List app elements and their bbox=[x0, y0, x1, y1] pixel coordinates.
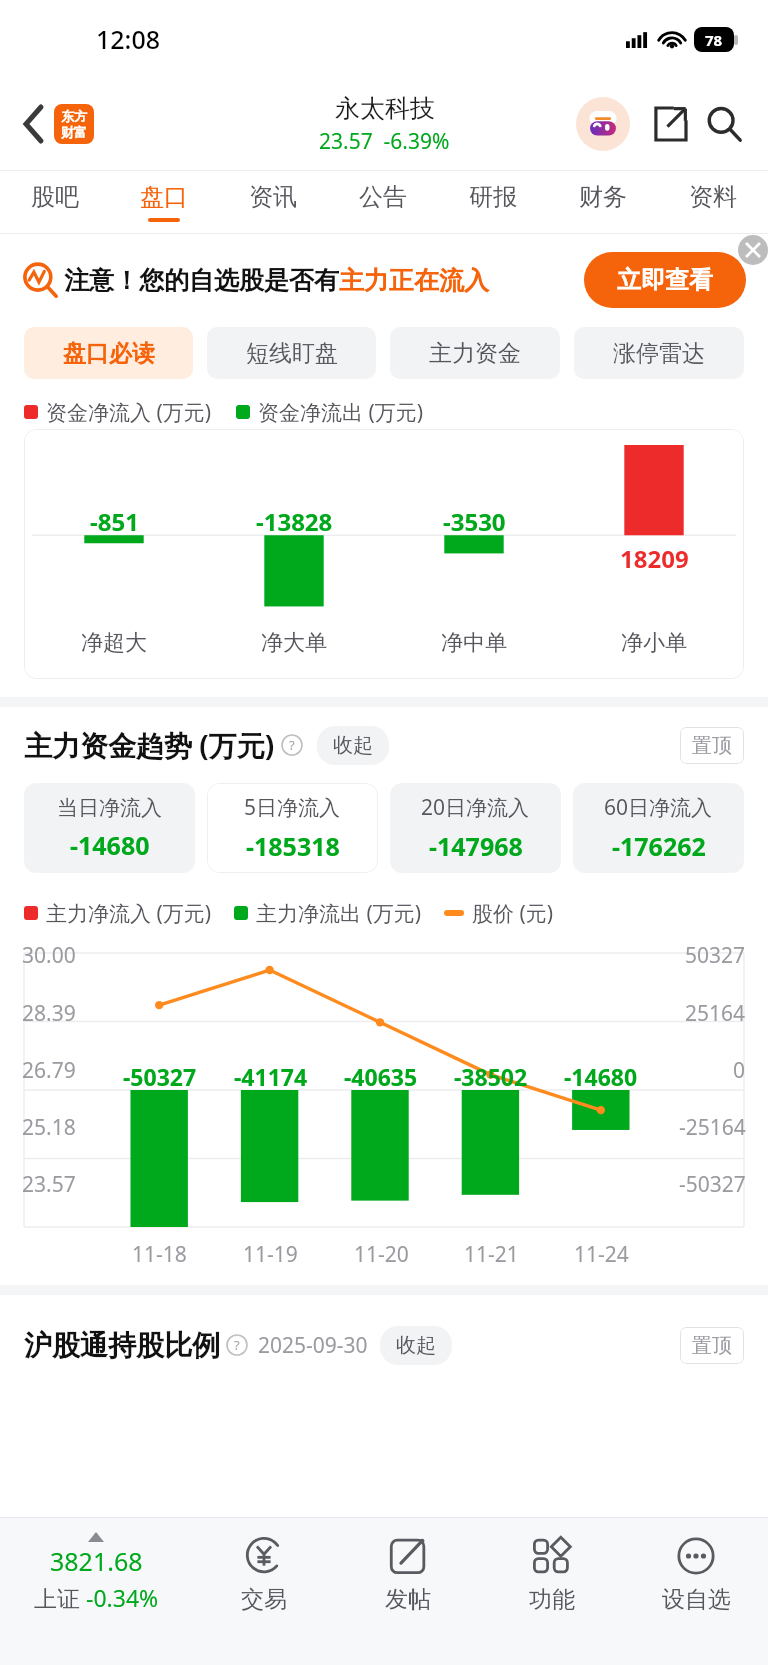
staticText: 23.57 -6.39% bbox=[319, 127, 450, 156]
staticText: 净超大 bbox=[81, 629, 147, 657]
button[interactable]: Back bbox=[16, 98, 102, 150]
button[interactable]: 5日净流入 bbox=[207, 783, 378, 873]
staticText: 净中单 bbox=[441, 629, 507, 657]
button[interactable]: 研报 bbox=[438, 171, 548, 233]
staticText: 23.57 bbox=[22, 1170, 76, 1199]
staticText: 主力净流入 (万元) bbox=[46, 899, 212, 928]
staticText: -0.34% bbox=[86, 1582, 159, 1613]
staticText: 设自选 bbox=[662, 1585, 731, 1614]
staticText: 2025-09-30 bbox=[258, 1331, 368, 1360]
button[interactable]: 收起 bbox=[380, 1326, 452, 1365]
button[interactable]: 设自选 bbox=[624, 1518, 768, 1665]
staticText: 25.18 bbox=[22, 1113, 76, 1142]
button[interactable]: 功能 bbox=[480, 1518, 624, 1665]
staticText: 主力资金趋势 (万元) bbox=[24, 726, 275, 764]
staticText: -3530 bbox=[443, 505, 506, 538]
staticText: 主力正在流入 bbox=[339, 265, 489, 296]
staticText: -50327 bbox=[123, 1061, 197, 1092]
button[interactable]: 当日净流入 bbox=[24, 783, 195, 873]
button[interactable]: 涨停雷达 bbox=[574, 327, 744, 379]
button[interactable]: 资讯 bbox=[218, 171, 328, 233]
staticText: -851 bbox=[90, 505, 139, 538]
staticText: -50327 bbox=[679, 1170, 746, 1199]
staticText: 11-20 bbox=[354, 1240, 409, 1269]
staticText: 5日净流入 bbox=[244, 793, 341, 822]
button[interactable]: 交易 bbox=[192, 1518, 336, 1665]
staticText: -185318 bbox=[246, 829, 340, 863]
staticText: -41174 bbox=[234, 1061, 308, 1092]
button[interactable]: Help bbox=[281, 734, 303, 756]
staticText: 18209 bbox=[620, 542, 689, 575]
button[interactable]: 发帖 bbox=[336, 1518, 480, 1665]
staticText: 30.00 bbox=[22, 941, 76, 970]
staticText: 置顶 bbox=[692, 1333, 732, 1358]
button[interactable]: 置顶 bbox=[680, 727, 744, 764]
button[interactable]: 3821.68 bbox=[0, 1518, 192, 1665]
staticText: -147968 bbox=[429, 829, 523, 863]
staticText: 20日净流入 bbox=[421, 793, 530, 822]
staticText: 股价 (元) bbox=[472, 899, 554, 928]
staticText: 收起 bbox=[396, 1333, 436, 1358]
staticText: 11-18 bbox=[132, 1240, 187, 1269]
button[interactable]: 财务 bbox=[548, 171, 658, 233]
button[interactable]: 收起 bbox=[317, 726, 389, 765]
button[interactable]: 20日净流入 bbox=[390, 783, 561, 873]
button[interactable]: Search bbox=[700, 100, 748, 148]
button[interactable]: 公告 bbox=[328, 171, 438, 233]
staticText: -14680 bbox=[70, 828, 150, 862]
staticText: 净小单 bbox=[621, 629, 687, 657]
button[interactable]: 资料 bbox=[658, 171, 768, 233]
button[interactable]: 置顶 bbox=[680, 1327, 744, 1364]
staticText: 财务 bbox=[579, 182, 627, 212]
staticText: -38502 bbox=[454, 1061, 528, 1092]
button[interactable]: 盘口必读 bbox=[24, 327, 193, 379]
staticText: 公告 bbox=[359, 182, 407, 212]
button[interactable]: 股吧 bbox=[0, 171, 109, 233]
staticText: 永太科技 bbox=[335, 93, 435, 124]
staticText: 交易 bbox=[241, 1585, 287, 1614]
staticText: 25164 bbox=[685, 999, 746, 1028]
button[interactable]: 立即查看 bbox=[584, 252, 746, 308]
staticText: 60日净流入 bbox=[604, 793, 713, 822]
staticText: 资讯 bbox=[249, 182, 297, 212]
staticText: 11-21 bbox=[464, 1240, 519, 1269]
button[interactable]: 主力资金 bbox=[390, 327, 560, 379]
staticText: 3821.68 bbox=[50, 1544, 143, 1578]
button[interactable]: 60日净流入 bbox=[573, 783, 744, 873]
staticText: 资金净流出 (万元) bbox=[258, 398, 424, 427]
staticText: 注意！您的自选股是否有 bbox=[64, 265, 339, 296]
staticText: 11-24 bbox=[574, 1240, 629, 1269]
staticText: 发帖 bbox=[385, 1585, 431, 1614]
button[interactable]: 盘口 bbox=[109, 171, 218, 233]
button[interactable]: 短线盯盘 bbox=[207, 327, 376, 379]
staticText: 28.39 bbox=[22, 999, 76, 1028]
staticText: ? bbox=[289, 736, 295, 754]
staticText: 立即查看 bbox=[617, 265, 713, 295]
staticText: ? bbox=[234, 1336, 240, 1354]
staticText: 资金净流入 (万元) bbox=[46, 398, 212, 427]
button[interactable]: Share bbox=[648, 102, 692, 146]
staticText: 11-19 bbox=[243, 1240, 298, 1269]
staticText: 26.79 bbox=[22, 1056, 76, 1085]
staticText: 涨停雷达 bbox=[613, 339, 705, 368]
staticText: 主力资金 bbox=[429, 339, 521, 368]
staticText: 当日净流入 bbox=[57, 795, 162, 821]
staticText: 12:08 bbox=[96, 22, 161, 56]
staticText: 上证 bbox=[34, 1582, 86, 1613]
staticText: 短线盯盘 bbox=[246, 339, 338, 368]
staticText: 资料 bbox=[689, 182, 737, 212]
staticText: 东方 bbox=[61, 108, 87, 124]
staticText: 沪股通持股比例 bbox=[24, 1328, 220, 1363]
staticText: -40635 bbox=[344, 1061, 418, 1092]
staticText: 主力净流出 (万元) bbox=[256, 899, 422, 928]
staticText: -176262 bbox=[612, 829, 706, 863]
button[interactable]: Close bbox=[738, 235, 768, 265]
staticText: 财富 bbox=[61, 124, 87, 140]
staticText: -14680 bbox=[564, 1061, 638, 1092]
staticText: 78 bbox=[705, 30, 723, 50]
staticText: 0 bbox=[733, 1056, 746, 1085]
button[interactable]: AI assistant bbox=[576, 97, 630, 151]
staticText: 50327 bbox=[685, 941, 746, 970]
staticText: -25164 bbox=[679, 1113, 746, 1142]
staticText: 盘口必读 bbox=[63, 339, 155, 368]
